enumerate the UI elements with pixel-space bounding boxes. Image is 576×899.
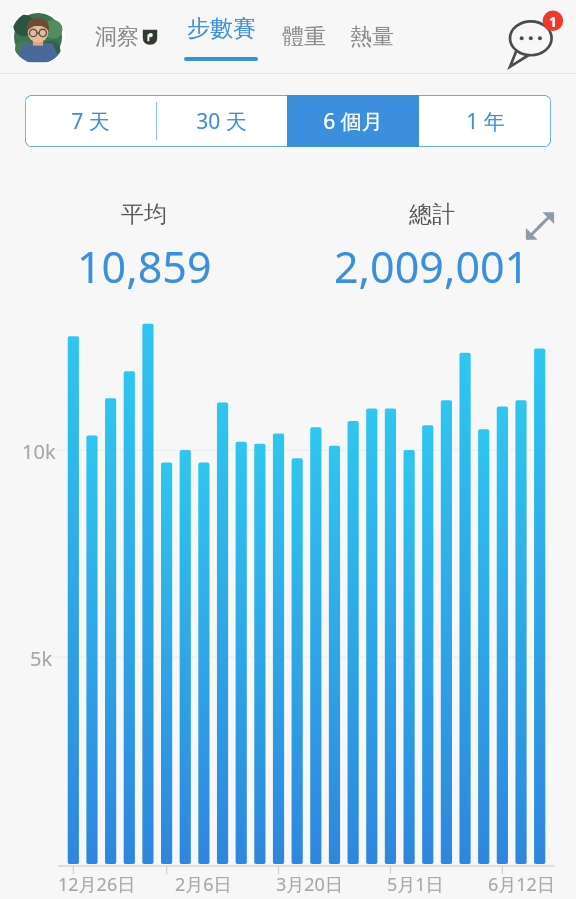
staticText: 6 個月 <box>323 107 383 136</box>
button[interactable]: 體重 <box>282 23 326 51</box>
button[interactable]: Expand chart <box>516 202 564 250</box>
button[interactable]: 7 天 <box>25 95 156 147</box>
staticText: 5月1日 <box>387 872 444 897</box>
staticText: 10,859 <box>77 237 212 296</box>
staticText: 1 <box>549 12 558 31</box>
button[interactable]: Profile <box>11 10 65 64</box>
button[interactable]: 6 個月 <box>287 95 419 147</box>
staticText: 步數賽 <box>187 14 256 43</box>
staticText: 30 天 <box>196 107 247 136</box>
staticText: 10k <box>22 438 56 465</box>
button[interactable]: 步數賽 <box>184 14 258 61</box>
button[interactable]: Messages <box>502 5 566 69</box>
staticText: 總計 <box>409 200 455 229</box>
staticText: 5k <box>30 645 53 672</box>
button[interactable]: 洞察 <box>95 23 158 51</box>
staticText: 2月6日 <box>175 872 232 897</box>
button[interactable]: 30 天 <box>156 95 287 147</box>
staticText: 平均 <box>121 200 167 229</box>
button[interactable]: 熱量 <box>350 23 394 51</box>
staticText: 7 天 <box>71 107 110 136</box>
staticText: 2,009,001 <box>334 237 530 296</box>
staticText: 洞察 <box>95 23 139 51</box>
staticText: 3月20日 <box>276 872 343 897</box>
staticText: 1 年 <box>466 107 505 136</box>
staticText: 6月12日 <box>488 872 555 897</box>
staticText: 12月26日 <box>58 872 136 897</box>
button[interactable]: 1 年 <box>419 95 551 147</box>
